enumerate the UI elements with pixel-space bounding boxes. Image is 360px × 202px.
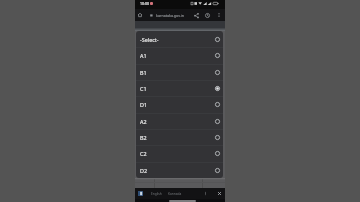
staticText: English [151, 192, 162, 196]
button[interactable]: Share [191, 9, 202, 21]
button[interactable]: Close keyboard [216, 188, 223, 199]
button[interactable]: A2 [136, 113, 223, 129]
staticText: B2 [140, 134, 147, 141]
button[interactable]: Reload [202, 9, 213, 21]
button[interactable]: Keyboard options [204, 188, 211, 199]
staticText: Kannada [168, 192, 182, 196]
staticText: C1 [140, 85, 147, 92]
button[interactable]: C1 [136, 80, 223, 96]
staticText: karnataka.gov.in [156, 13, 184, 18]
button[interactable]: B1 [136, 64, 223, 80]
button[interactable]: -Select- [136, 31, 223, 47]
button[interactable]: D2 [136, 162, 223, 178]
staticText: 10:00 [140, 1, 149, 6]
button[interactable]: B2 [136, 129, 223, 145]
button[interactable]: More options [213, 9, 225, 21]
staticText: A1 [140, 52, 147, 59]
staticText: C2 [140, 150, 147, 157]
button[interactable]: D1 [136, 96, 223, 113]
staticText: -Select- [140, 36, 159, 43]
button[interactable]: karnataka.gov.in [150, 9, 190, 21]
button[interactable]: C2 [136, 145, 223, 162]
button[interactable]: A1 [136, 47, 223, 64]
staticText: B1 [140, 69, 147, 76]
staticText: A2 [140, 118, 147, 125]
staticText: D2 [140, 167, 148, 174]
staticText: D1 [140, 101, 148, 108]
button[interactable]: Home [135, 9, 145, 21]
